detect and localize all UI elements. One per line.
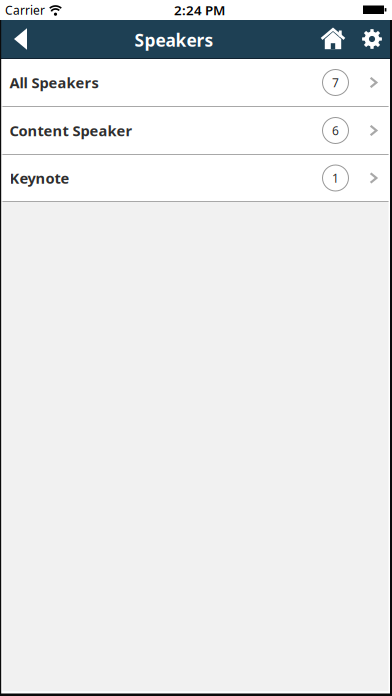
button[interactable]: Back <box>0 20 39 58</box>
staticText: Carrier <box>5 2 45 18</box>
button[interactable]: Keynote <box>0 155 392 201</box>
staticText: Speakers <box>134 28 213 51</box>
staticText: Content Speaker <box>9 121 132 140</box>
button[interactable]: All Speakers <box>0 59 392 106</box>
button[interactable]: Home <box>315 20 353 58</box>
staticText: All Speakers <box>9 73 98 92</box>
staticText: 2:24 PM <box>174 1 225 19</box>
staticText: 7 <box>332 74 339 90</box>
staticText: 1 <box>332 170 339 186</box>
staticText: Keynote <box>9 168 69 188</box>
staticText: 6 <box>332 122 339 138</box>
button[interactable]: Settings <box>353 20 392 58</box>
button[interactable]: Content Speaker <box>0 107 392 154</box>
